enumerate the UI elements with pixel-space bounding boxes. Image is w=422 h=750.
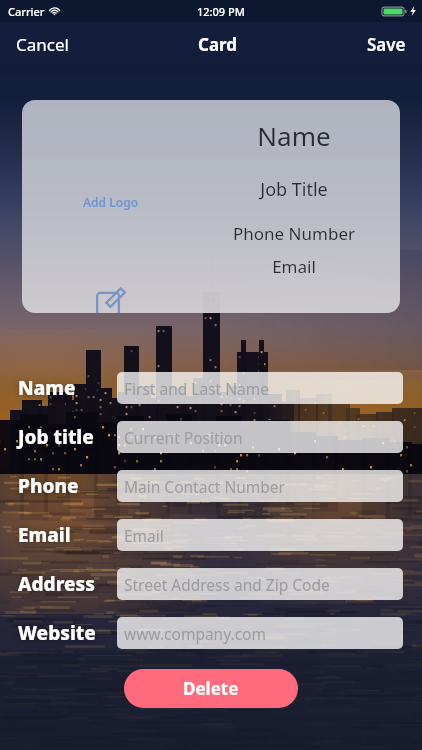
staticText: Save <box>367 33 406 56</box>
button[interactable]: First and Last Name <box>117 372 403 404</box>
button[interactable]: Current Position <box>117 421 403 453</box>
staticText: 12:09 PM <box>197 4 245 19</box>
staticText: Add Logo <box>83 194 139 210</box>
button[interactable]: Email <box>117 519 403 551</box>
staticText: Card <box>198 33 238 56</box>
staticText: Website <box>18 620 96 646</box>
staticText: First and Last Name <box>124 378 269 399</box>
staticText: Email <box>18 522 71 548</box>
button[interactable]: Delete <box>124 669 298 708</box>
staticText: Address <box>18 571 95 597</box>
staticText: Street Address and Zip Code <box>124 574 330 595</box>
staticText: Name <box>18 375 76 401</box>
button[interactable]: Edit card <box>93 281 128 313</box>
staticText: Phone Number <box>184 222 400 245</box>
button[interactable]: Add Logo <box>77 188 145 216</box>
button[interactable]: Save <box>363 27 410 62</box>
staticText: Email <box>124 525 164 546</box>
staticText: Main Contact Number <box>124 476 285 497</box>
staticText: Phone <box>18 473 79 499</box>
button[interactable]: www.company.com <box>117 617 403 649</box>
staticText: www.company.com <box>124 623 266 644</box>
staticText: Email <box>184 255 400 278</box>
staticText: Current Position <box>124 427 243 448</box>
staticText: Job title <box>18 424 94 450</box>
button[interactable]: Cancel <box>12 27 73 62</box>
staticText: Job Title <box>184 177 400 202</box>
button[interactable]: Main Contact Number <box>117 470 403 502</box>
staticText: Cancel <box>16 33 69 56</box>
button[interactable]: Street Address and Zip Code <box>117 568 403 600</box>
staticText: Name <box>184 118 400 153</box>
staticText: Carrier <box>8 4 45 19</box>
staticText: Delete <box>183 677 239 700</box>
